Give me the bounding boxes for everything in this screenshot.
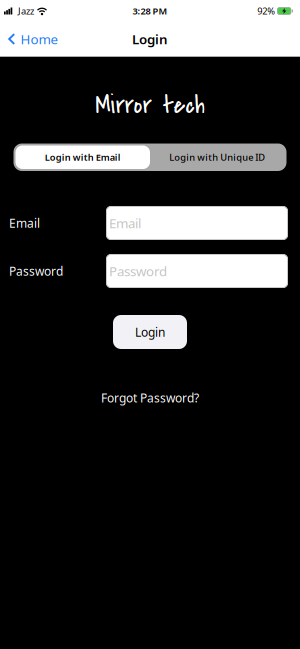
staticText: Forgot Password?	[101, 390, 199, 406]
staticText: 92%	[257, 5, 275, 17]
staticText: Login	[135, 324, 165, 340]
button[interactable]: Login with Unique ID	[150, 145, 284, 169]
staticText: Login with Email	[45, 151, 121, 163]
button[interactable]: Forgot Password?	[101, 390, 199, 406]
staticText: Mirror tech	[95, 87, 204, 123]
staticText: Home	[20, 30, 58, 48]
staticText: Login with Unique ID	[169, 151, 265, 163]
staticText: Jazz	[18, 5, 34, 17]
button[interactable]: Home	[0, 30, 58, 48]
staticText: Password	[9, 263, 63, 279]
button[interactable]: Login	[113, 315, 187, 349]
staticText: 3:28 PM	[132, 5, 167, 17]
button[interactable]: Login with Email	[15, 145, 150, 169]
staticText: Password	[109, 262, 167, 280]
staticText: Email	[109, 214, 141, 232]
staticText: Email	[9, 215, 40, 231]
staticText: Login	[132, 30, 168, 48]
